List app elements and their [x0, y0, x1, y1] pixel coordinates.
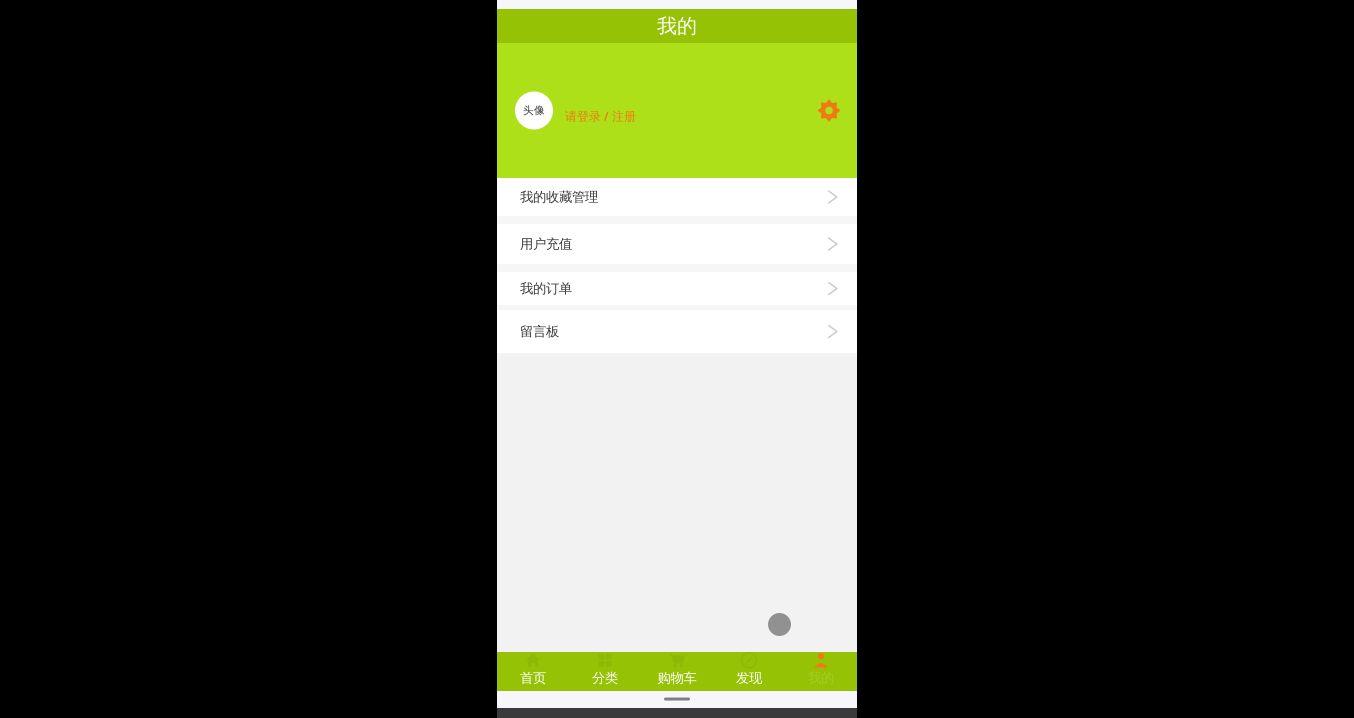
staticText: 留言板	[520, 323, 559, 340]
staticText: 首页	[520, 670, 546, 686]
staticText: 请登录 / 注册	[565, 108, 636, 124]
staticText: 购物车	[657, 670, 696, 686]
button[interactable]: 首页	[497, 652, 569, 691]
staticText: 分类	[592, 670, 618, 686]
staticText: 我的收藏管理	[520, 189, 598, 205]
button[interactable]: 我的订单	[497, 272, 857, 305]
button[interactable]: Back to top	[768, 613, 791, 636]
button[interactable]: 留言板	[497, 310, 857, 353]
staticText: 我的订单	[520, 280, 572, 297]
button[interactable]: 购物车	[641, 652, 713, 691]
button[interactable]: 我的收藏管理	[497, 178, 857, 216]
button[interactable]: Settings	[816, 97, 842, 123]
button[interactable]: 分类	[569, 652, 641, 691]
button[interactable]: 我的	[785, 652, 857, 691]
staticText: 头像	[523, 104, 545, 117]
staticText: 用户充值	[520, 236, 572, 252]
button[interactable]: 用户充值	[497, 224, 857, 264]
staticText: 我的	[808, 670, 834, 686]
button[interactable]: 发现	[713, 652, 785, 691]
staticText: 发现	[736, 670, 762, 686]
staticText: 我的	[657, 14, 697, 38]
button[interactable]: 请登录 / 注册	[565, 91, 636, 129]
